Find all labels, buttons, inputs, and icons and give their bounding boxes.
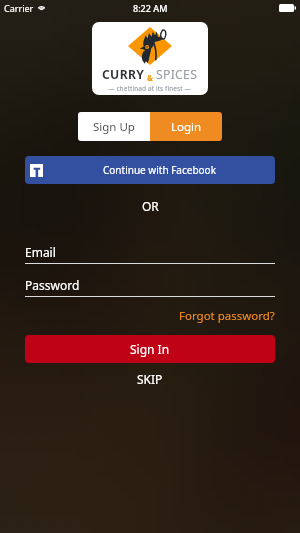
staticText: Email	[25, 244, 56, 260]
staticText: 8:22 AM	[133, 2, 168, 14]
staticText: &	[145, 72, 156, 83]
staticText: Carrier	[4, 2, 34, 14]
staticText: Login	[171, 119, 202, 135]
staticText: Password	[25, 277, 80, 293]
button[interactable]: SKIP	[137, 371, 163, 387]
button[interactable]: Forgot password?	[179, 308, 275, 324]
staticText: Sign In	[130, 341, 170, 357]
staticText: Continue with Facebook	[103, 163, 216, 177]
staticText: SPICES	[156, 66, 198, 83]
staticText: — chettinad at its finest —	[108, 84, 192, 93]
staticText: OR	[142, 198, 159, 214]
button[interactable]: Sign Up	[78, 112, 150, 141]
staticText: SKIP	[137, 371, 163, 387]
button[interactable]: Sign In	[25, 335, 275, 363]
staticText: Sign Up	[93, 119, 135, 135]
button[interactable]: Login	[150, 112, 222, 141]
staticText: CURRY	[102, 66, 145, 83]
button[interactable]: Continue with Facebook	[25, 156, 275, 184]
